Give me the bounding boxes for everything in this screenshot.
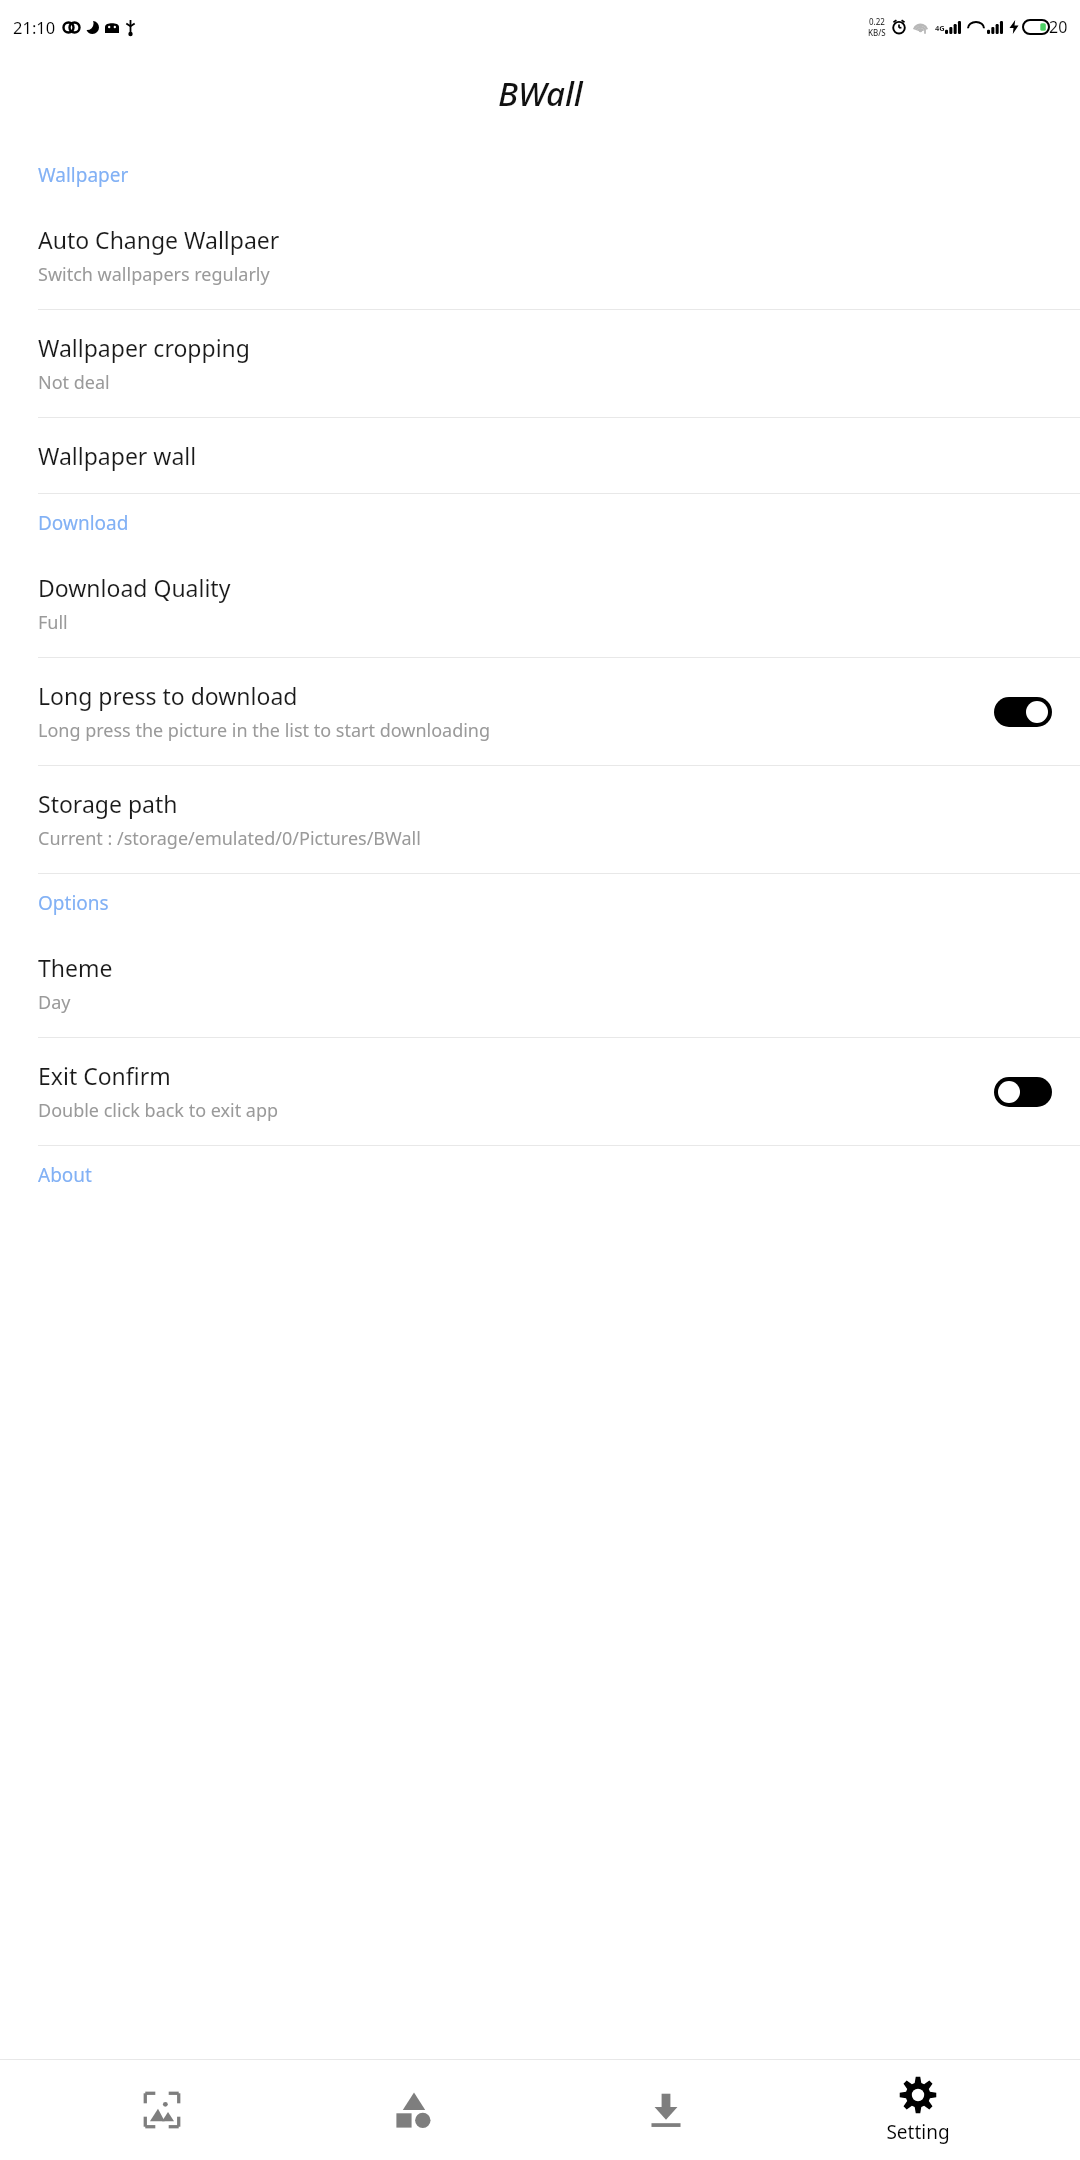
staticText: 21:10 [13,16,56,38]
button[interactable]: Long press to download [0,658,1080,765]
button[interactable]: Downloads [576,2082,756,2138]
staticText: Options [38,890,109,916]
staticText: Double click back to exit app [38,1098,279,1123]
button[interactable]: Toggle on [994,697,1052,727]
button[interactable]: Wallpapers [72,2082,252,2138]
button[interactable]: Download Quality [0,550,1080,657]
button[interactable]: Setting [828,2069,1008,2151]
staticText: Long press the picture in the list to st… [38,718,491,743]
staticText: KB/S [868,27,886,38]
button[interactable]: Exit Confirm [0,1038,1080,1145]
staticText: Download Quality [38,572,231,603]
button[interactable]: Auto Change Wallpaer [0,202,1080,309]
staticText: Auto Change Wallpaer [38,224,280,255]
staticText: Storage path [38,788,178,819]
button[interactable]: Wallpaper cropping [0,310,1080,417]
button[interactable]: Categories [324,2082,504,2138]
button[interactable]: Theme [0,930,1080,1037]
staticText: Setting [886,2119,950,2145]
staticText: Exit Confirm [38,1060,171,1091]
staticText: Long press to download [38,680,298,711]
staticText: Wallpaper cropping [38,332,250,363]
staticText: 20 [1049,16,1068,38]
staticText: Switch wallpapers regularly [38,262,270,287]
staticText: Wallpaper wall [38,440,197,471]
staticText: Current : /storage/emulated/0/Pictures/B… [38,826,421,851]
staticText: Day [38,990,71,1015]
staticText: Download [38,510,129,536]
staticText: 4G [935,23,945,33]
staticText: Full [38,610,68,635]
button[interactable]: Wallpaper wall [0,418,1080,493]
staticText: BWall [498,71,583,116]
staticText: Theme [38,952,113,983]
staticText: 0.22 [869,16,885,27]
staticText: Not deal [38,370,110,395]
staticText: About [38,1162,92,1188]
button[interactable]: Toggle off [994,1077,1052,1107]
button[interactable]: Storage path [0,766,1080,873]
staticText: Wallpaper [38,162,129,188]
